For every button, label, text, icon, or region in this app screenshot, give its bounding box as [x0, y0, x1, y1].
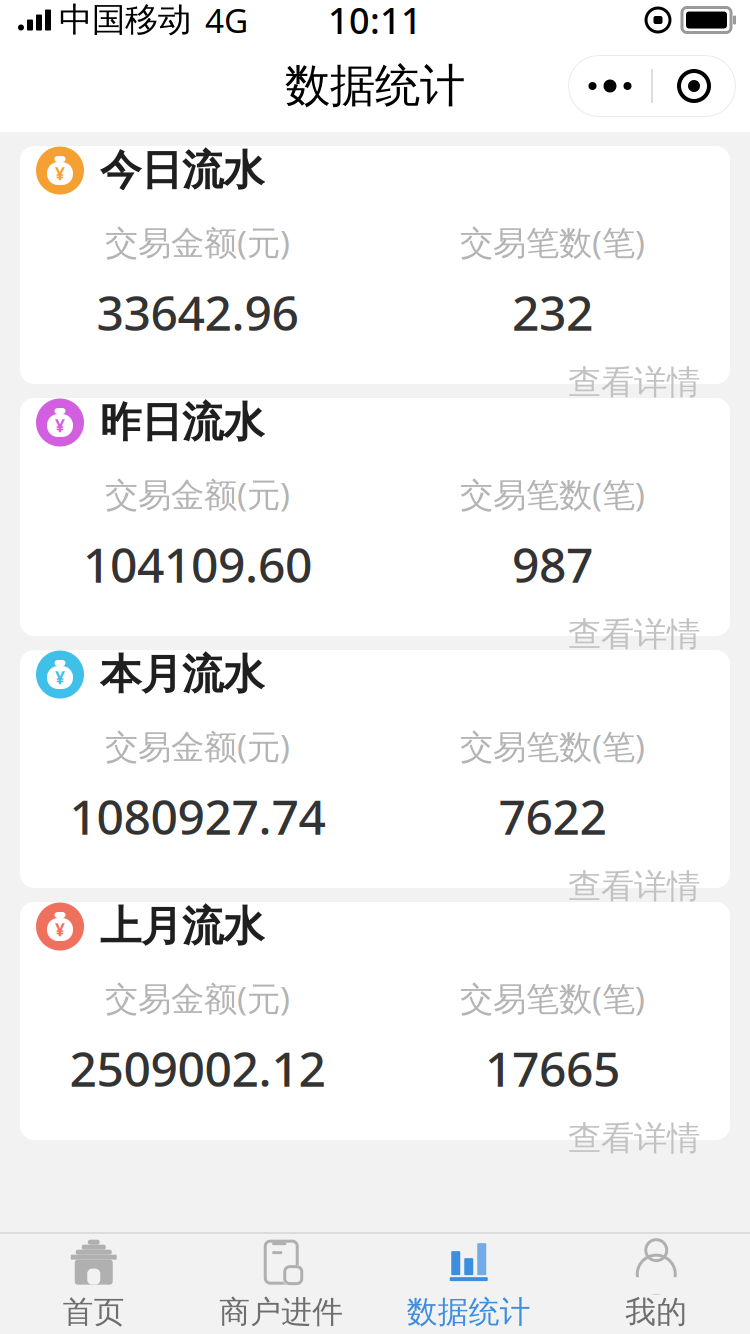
staticText: 交易笔数(笔) [460, 472, 645, 516]
staticText: ¥ [55, 162, 65, 185]
staticText: 查看详情 [568, 362, 700, 403]
staticText: ¥ [55, 414, 65, 437]
staticText: 中国移动 [59, 0, 191, 40]
button[interactable]: ¥ [20, 146, 730, 384]
staticText: 10:11 [328, 0, 422, 44]
button[interactable]: 查看详情 [562, 1114, 706, 1163]
button[interactable]: 我的 [562, 1229, 750, 1334]
staticText: 今日流水 [100, 145, 264, 196]
staticText: 交易笔数(笔) [460, 724, 645, 768]
staticText: 987 [512, 532, 593, 596]
staticText: 商户进件 [219, 1293, 343, 1331]
staticText: 本月流水 [100, 649, 264, 700]
staticText: 1080927.74 [69, 784, 325, 848]
button[interactable]: 更多 [569, 56, 651, 116]
staticText: 数据统计 [407, 1293, 531, 1331]
staticText: 查看详情 [568, 1118, 700, 1159]
button[interactable]: ¥ [20, 398, 730, 636]
staticText: 4G [205, 0, 248, 42]
staticText: 我的 [625, 1293, 687, 1331]
button[interactable]: 关闭 [653, 56, 735, 116]
staticText: 7622 [498, 784, 606, 848]
staticText: 交易金额(元) [105, 220, 290, 264]
staticText: 2509002.12 [69, 1036, 325, 1100]
button[interactable]: 查看详情 [562, 358, 706, 407]
button[interactable]: 查看详情 [562, 610, 706, 659]
staticText: 上月流水 [100, 901, 264, 952]
button[interactable]: 商户进件 [187, 1229, 375, 1334]
button[interactable]: ¥ [20, 650, 730, 888]
staticText: 232 [512, 280, 593, 344]
staticText: 交易笔数(笔) [460, 976, 645, 1020]
staticText: 17665 [485, 1036, 620, 1100]
staticText: 数据统计 [285, 58, 465, 114]
staticText: ¥ [55, 918, 65, 941]
staticText: 查看详情 [568, 866, 700, 907]
staticText: 交易笔数(笔) [460, 220, 645, 264]
staticText: 昨日流水 [100, 397, 264, 448]
staticText: ¥ [55, 666, 65, 689]
staticText: 33642.96 [96, 280, 298, 344]
button[interactable]: 查看详情 [562, 862, 706, 911]
staticText: 104109.60 [83, 532, 312, 596]
button[interactable]: ¥ [20, 902, 730, 1140]
staticText: 交易金额(元) [105, 724, 290, 768]
staticText: 查看详情 [568, 614, 700, 655]
staticText: 首页 [63, 1293, 125, 1331]
staticText: 交易金额(元) [105, 976, 290, 1020]
staticText: 交易金额(元) [105, 472, 290, 516]
button[interactable]: 数据统计 [375, 1229, 562, 1334]
button[interactable]: 首页 [0, 1229, 187, 1334]
